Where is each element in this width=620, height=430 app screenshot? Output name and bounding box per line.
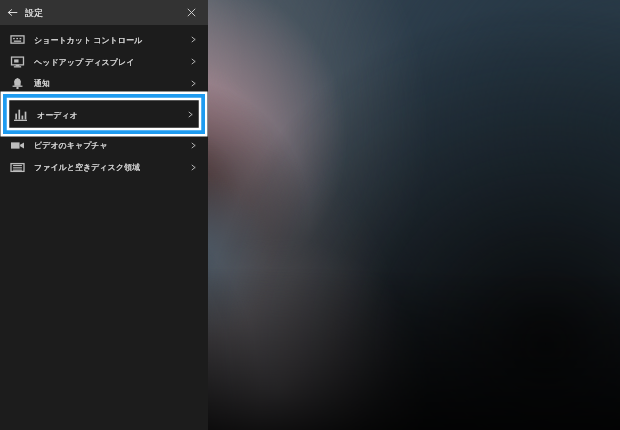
staticText: ヘッドアップ ディスプレイ xyxy=(34,56,189,67)
button[interactable]: ショートカット コントロール xyxy=(0,28,208,50)
other: Open xyxy=(189,141,198,150)
button[interactable]: オーディオ xyxy=(3,94,205,134)
other: Open xyxy=(189,57,198,66)
staticText: ビデオのキャプチャ xyxy=(34,140,189,150)
staticText: 設定 xyxy=(25,7,179,18)
other: Open xyxy=(189,79,198,88)
staticText: ショートカット コントロール xyxy=(34,34,189,45)
button[interactable]: Close xyxy=(179,0,204,25)
other: Open xyxy=(189,163,198,172)
other: Open xyxy=(189,35,198,44)
staticText: ファイルと空きディスク領域 xyxy=(34,162,189,172)
other: Open xyxy=(186,110,195,119)
button[interactable]: ヘッドアップ ディスプレイ xyxy=(0,50,208,72)
button[interactable]: Back xyxy=(0,0,25,25)
staticText: 通知 xyxy=(34,78,189,88)
button[interactable]: ファイルと空きディスク領域 xyxy=(0,156,208,178)
button[interactable]: 通知 xyxy=(0,72,208,94)
button[interactable]: ビデオのキャプチャ xyxy=(0,134,208,156)
staticText: オーディオ xyxy=(37,110,186,120)
